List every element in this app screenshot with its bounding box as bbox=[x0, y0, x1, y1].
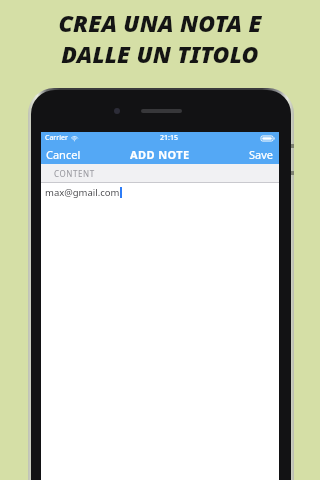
button[interactable]: max@gmail.com bbox=[41, 183, 279, 480]
button[interactable]: Save bbox=[244, 144, 279, 164]
staticText: ADD NOTE bbox=[130, 147, 190, 162]
button[interactable]: Cancel bbox=[41, 144, 86, 164]
staticText: Carrier bbox=[45, 133, 68, 143]
staticText: CONTENT bbox=[54, 168, 95, 179]
staticText: Cancel bbox=[46, 147, 81, 161]
staticText: 21:15 bbox=[160, 133, 178, 143]
staticText: Save bbox=[249, 147, 274, 161]
staticText: max@gmail.com bbox=[45, 186, 120, 199]
staticText: DALLE UN TITOLO bbox=[61, 38, 259, 69]
staticText: CREA UNA NOTA E bbox=[58, 7, 262, 38]
